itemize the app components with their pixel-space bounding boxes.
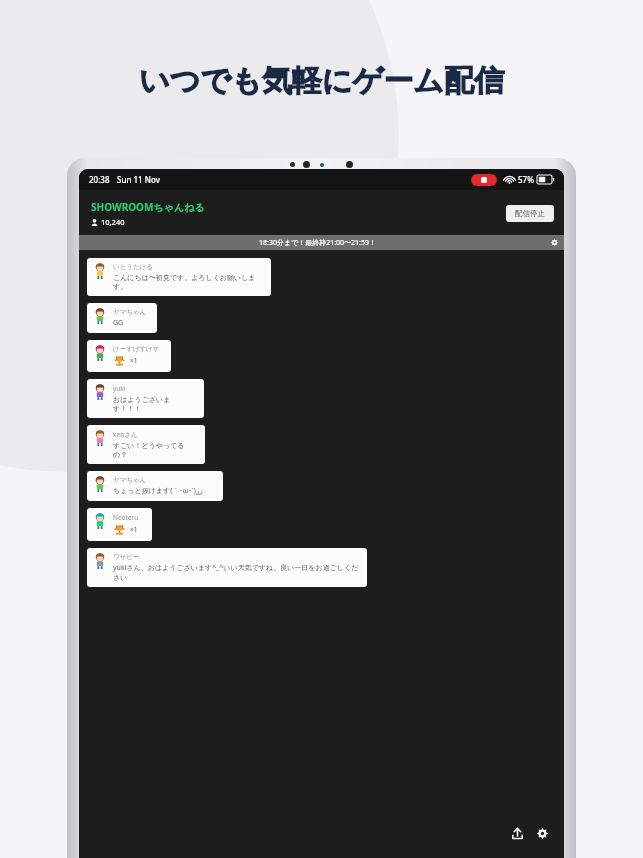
staticText: こんにちは〜初見です。よろしくお願いします。	[113, 273, 264, 291]
staticText: ×1	[130, 356, 138, 365]
staticText: ×1	[130, 525, 138, 534]
button[interactable]: ワサビー	[87, 548, 367, 587]
staticText: ヤマちゃん	[113, 308, 147, 316]
staticText: Sun 11 Nov	[117, 174, 160, 185]
staticText: おはようございます！！！	[113, 395, 197, 413]
button[interactable]: Settings	[533, 824, 551, 842]
button[interactable]: kenさん	[87, 425, 205, 464]
staticText: 20:38	[89, 174, 110, 185]
button[interactable]: いとうたける	[87, 258, 271, 296]
staticText: 10,240	[101, 217, 125, 227]
button[interactable]: ヤマちゃん	[87, 303, 157, 333]
staticText: ちょっと抜けます(｀･ω･´)ﺭﺭ	[113, 486, 203, 496]
staticText: ヤマちゃん	[113, 476, 147, 484]
staticText: 57%	[518, 174, 534, 185]
staticText: yukiさん、おはようございます^_^いい天気ですね。良い一日をお過ごしください	[113, 563, 360, 582]
staticText: すごい！どうやってるの？	[113, 441, 198, 459]
button[interactable]: Neoteru	[87, 508, 152, 541]
staticText: いとうたける	[113, 263, 153, 271]
staticText: Neoteru	[113, 513, 139, 522]
staticText: yuki	[113, 384, 126, 393]
button[interactable]: けーすけすけす	[87, 340, 171, 372]
staticText: いつでも気軽にゲーム配信	[139, 62, 504, 100]
staticText: SHOWROOMちゃんねる	[91, 200, 205, 214]
staticText: kenさん	[113, 430, 138, 439]
staticText: 配信停止	[515, 209, 545, 218]
staticText: ワサビー	[113, 553, 140, 561]
button[interactable]: Share	[508, 824, 526, 842]
button[interactable]: ヤマちゃん	[87, 471, 223, 501]
button[interactable]: 配信停止	[506, 205, 554, 222]
button[interactable]: 18:30分まで！最終枠21:00〜21:59！	[79, 235, 564, 250]
staticText: けーすけすけす	[113, 345, 160, 353]
staticText: 18:30分まで！最終枠21:00〜21:59！	[259, 238, 377, 248]
staticText: GG	[113, 318, 124, 328]
button[interactable]: yuki	[87, 379, 204, 418]
